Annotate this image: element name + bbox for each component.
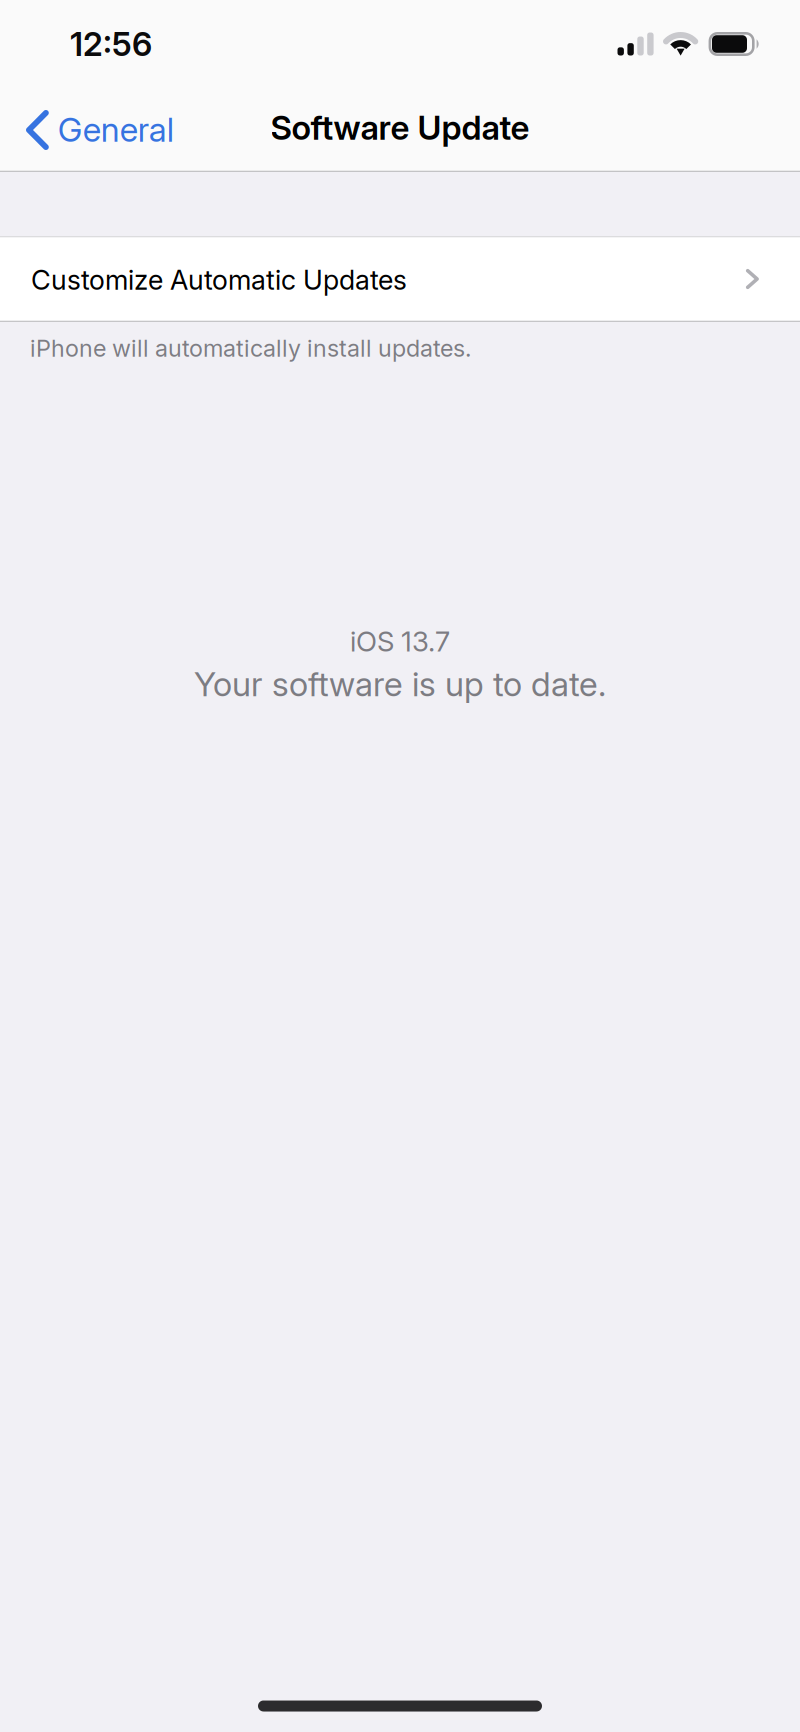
button[interactable]: Back to General (26, 101, 184, 159)
staticText: iOS 13.7 (350, 625, 450, 658)
staticText: Your software is up to date. (194, 664, 606, 704)
staticText: 12:56 (70, 24, 152, 64)
staticText: iPhone will automatically install update… (30, 334, 471, 362)
button[interactable]: Customize Automatic Updates (0, 236, 800, 322)
staticText: Customize Automatic Updates (31, 264, 407, 296)
staticText: Software Update (270, 107, 529, 148)
staticText: General (58, 109, 174, 150)
